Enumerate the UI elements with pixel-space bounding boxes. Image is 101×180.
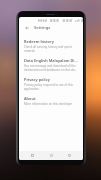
- button[interactable]: Back: [23, 24, 31, 32]
- button[interactable]: Data English Malayalam Dictionary: [19, 55, 83, 74]
- staticText: Redeem history: [24, 39, 54, 44]
- button[interactable]: Back: [65, 151, 74, 160]
- staticText: About: [24, 96, 36, 101]
- button[interactable]: Privacy policy: [19, 74, 83, 93]
- staticText: Privacy policy: [24, 77, 50, 82]
- staticText: Data English Malayalam Dictionary: [24, 58, 78, 63]
- button[interactable]: Home: [47, 151, 56, 160]
- staticText: You can manage and download all the dict…: [24, 64, 78, 72]
- staticText: Check all earning history and spent rewa…: [24, 45, 78, 53]
- button[interactable]: Redeem history: [19, 36, 83, 55]
- staticText: More information on this developer: [24, 102, 73, 106]
- button[interactable]: About: [19, 93, 83, 108]
- button[interactable]: Recent apps: [28, 151, 37, 160]
- staticText: Settings: [34, 25, 51, 31]
- staticText: Privacy policy required to use of this a…: [24, 83, 78, 91]
